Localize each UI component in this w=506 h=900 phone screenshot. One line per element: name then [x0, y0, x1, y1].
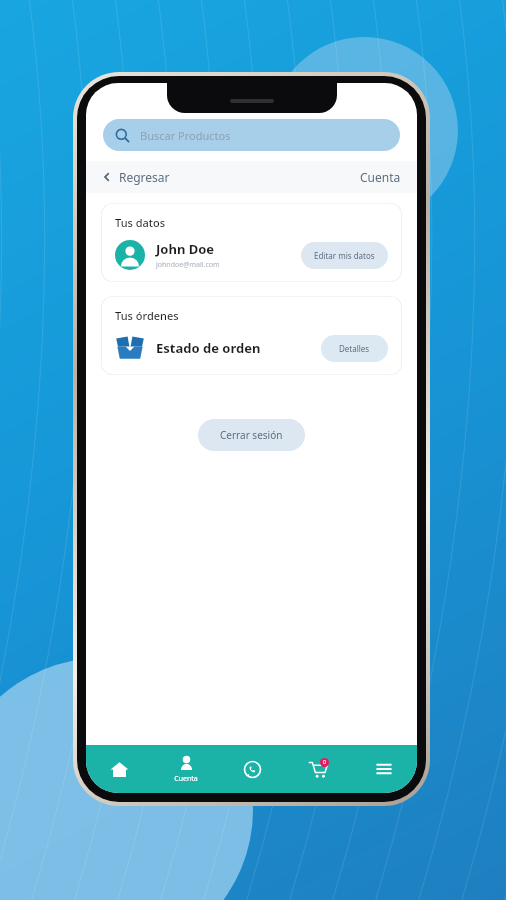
staticText: Editar mis datos [314, 250, 375, 261]
button[interactable]: Menu [351, 745, 417, 793]
staticText: Cuenta [360, 169, 401, 185]
staticText: Regresar [119, 169, 170, 185]
button[interactable]: Buscar Productos [103, 119, 400, 151]
staticText: Buscar Productos [140, 128, 231, 143]
staticText: Cuenta [174, 774, 198, 784]
staticText: 0 [323, 759, 326, 766]
staticText: Cerrar sesión [220, 428, 283, 442]
button[interactable]: Cerrar sesión [198, 419, 305, 451]
staticText: Tus datos [115, 215, 166, 230]
button[interactable]: Editar mis datos [301, 242, 388, 269]
button[interactable]: WhatsApp [219, 745, 285, 793]
staticText: johndoe@mail.com [156, 260, 220, 270]
staticText: Tus órdenes [115, 308, 179, 323]
button[interactable]: Cuenta [153, 745, 219, 793]
button[interactable]: Cuenta [360, 169, 401, 185]
staticText: Estado de orden [156, 339, 261, 357]
button[interactable]: Home [86, 745, 153, 793]
staticText: John Doe [156, 240, 215, 258]
staticText: Detalles [339, 343, 370, 354]
button[interactable]: Carrito [285, 745, 351, 793]
button[interactable]: Detalles [321, 335, 388, 362]
button[interactable]: Regresar [102, 169, 176, 185]
